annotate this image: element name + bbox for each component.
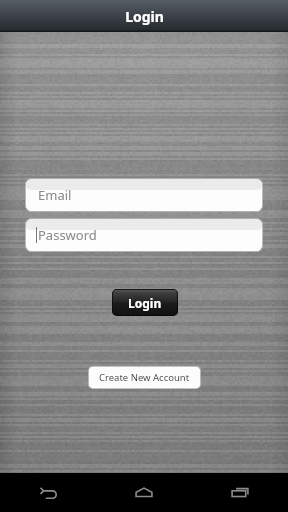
- button[interactable]: Password: [25, 218, 263, 252]
- button[interactable]: Recent apps: [192, 473, 288, 512]
- staticText: Password: [38, 226, 97, 244]
- button[interactable]: Login: [112, 289, 178, 316]
- button[interactable]: Home: [96, 473, 192, 512]
- staticText: Login: [125, 7, 164, 26]
- button[interactable]: Create New Account: [88, 366, 201, 389]
- button[interactable]: Email: [25, 178, 263, 212]
- staticText: Email: [38, 186, 72, 204]
- staticText: Create New Account: [99, 371, 190, 384]
- button[interactable]: Back: [0, 473, 96, 512]
- staticText: Login: [128, 295, 162, 311]
